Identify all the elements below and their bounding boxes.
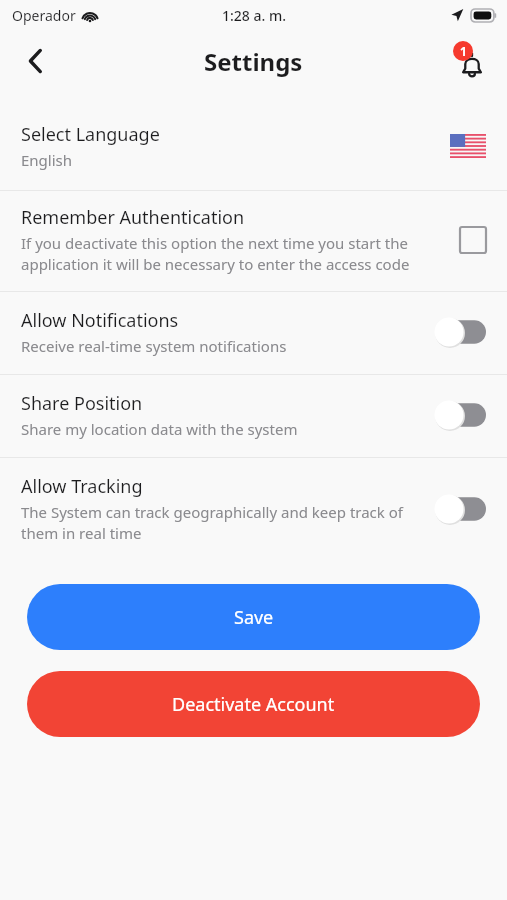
button[interactable]: Allow Tracking xyxy=(0,458,507,562)
button[interactable]: Toggle xyxy=(434,400,486,430)
staticText: Share my location data with the system xyxy=(21,419,298,439)
staticText: Select Language xyxy=(21,122,160,147)
button[interactable]: Notifications xyxy=(445,34,499,88)
button[interactable]: Deactivate Account xyxy=(27,671,480,737)
button[interactable]: Toggle xyxy=(434,317,486,347)
staticText: Share Position xyxy=(21,391,143,416)
staticText: Settings xyxy=(204,45,303,78)
staticText: Deactivate Account xyxy=(172,692,335,717)
button[interactable]: Allow Notifications xyxy=(0,292,507,374)
button[interactable]: Toggle xyxy=(434,494,486,524)
staticText: Operador xyxy=(12,6,76,25)
staticText: Receive real-time system notifications xyxy=(21,336,287,356)
button[interactable]: Select Language xyxy=(0,106,507,190)
staticText: If you deactivate this option the next t… xyxy=(21,233,446,275)
staticText: English xyxy=(21,150,73,170)
button[interactable]: Save xyxy=(27,584,480,650)
button[interactable]: Remember Authentication xyxy=(0,191,507,291)
staticText: 1:28 a. m. xyxy=(222,6,286,25)
staticText: The System can track geographically and … xyxy=(21,502,420,544)
staticText: Save xyxy=(234,605,274,630)
button[interactable]: Share Position xyxy=(0,375,507,457)
staticText: 1 xyxy=(460,43,467,59)
button[interactable]: Back xyxy=(8,34,62,88)
staticText: Remember Authentication xyxy=(21,205,245,230)
staticText: Allow Tracking xyxy=(21,474,143,499)
staticText: Allow Notifications xyxy=(21,308,179,333)
